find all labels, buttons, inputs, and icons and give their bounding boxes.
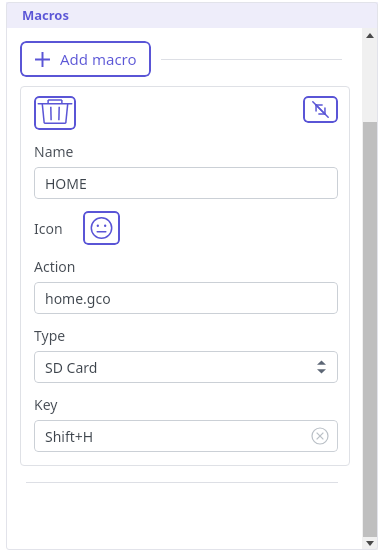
button[interactable]: HOME [34,167,338,199]
button[interactable]: home.gco [34,282,338,314]
staticText: Name [34,142,74,161]
button[interactable]: Scroll down [362,536,378,550]
staticText: SD Card [45,358,98,377]
button[interactable]: Add macro [20,41,151,77]
staticText: Key [34,395,58,414]
staticText: Icon [34,219,63,238]
staticText: Shift+H [45,427,94,446]
staticText: HOME [45,174,87,193]
staticText: Add macro [60,49,137,69]
staticText: Action [34,257,76,276]
button[interactable]: Delete macro [34,96,76,130]
staticText: home.gco [45,289,111,308]
button[interactable]: Choose icon [83,211,120,245]
button[interactable]: Scroll up [362,28,378,42]
staticText: Macros [22,6,69,24]
staticText: Type [34,326,66,345]
button[interactable]: SD Card [34,351,338,383]
button[interactable]: Clear [311,427,329,445]
button[interactable]: Shift+H [34,420,338,452]
button[interactable]: Collapse [303,96,338,123]
